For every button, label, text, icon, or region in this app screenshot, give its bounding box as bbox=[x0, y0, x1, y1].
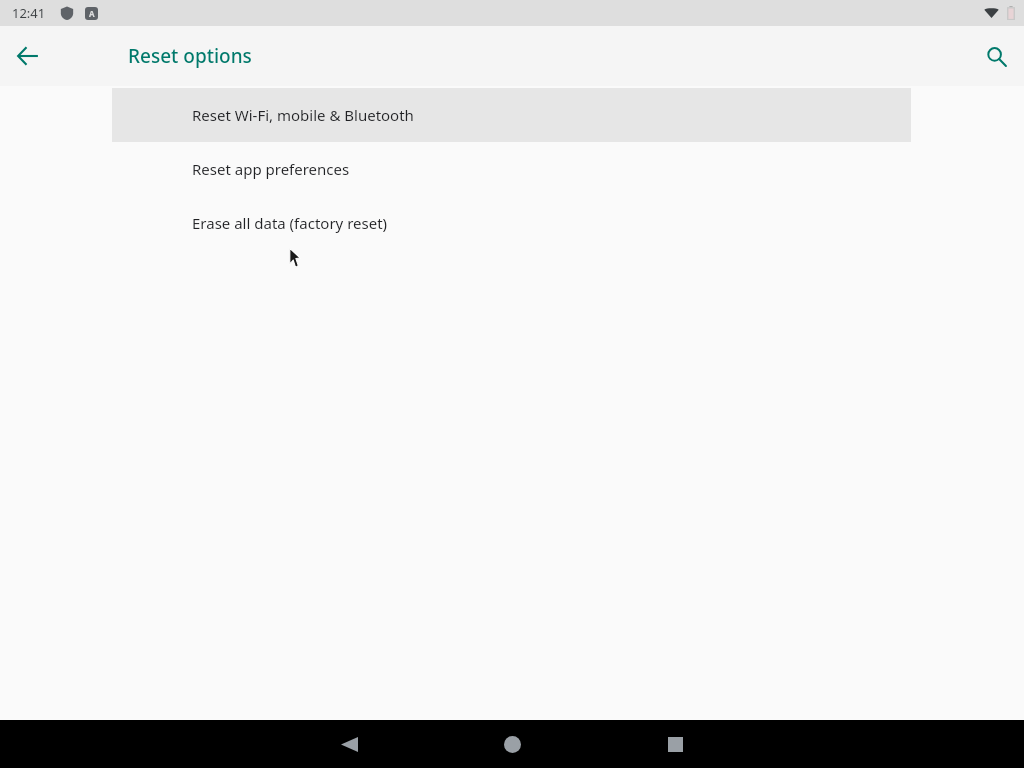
button[interactable]: Back bbox=[325, 720, 373, 768]
button[interactable]: Search bbox=[972, 32, 1020, 80]
button[interactable]: Erase all data (factory reset) bbox=[112, 196, 911, 250]
staticText: 12:41 bbox=[12, 4, 46, 22]
button[interactable]: Reset app preferences bbox=[112, 142, 911, 196]
button[interactable]: Recent apps bbox=[651, 720, 699, 768]
staticText: A bbox=[89, 8, 95, 19]
button[interactable]: Back bbox=[4, 32, 52, 80]
staticText: Reset app preferences bbox=[192, 159, 350, 179]
staticText: Reset Wi-Fi, mobile & Bluetooth bbox=[192, 105, 414, 125]
button[interactable]: Reset Wi-Fi, mobile & Bluetooth bbox=[112, 88, 911, 142]
button[interactable]: Home bbox=[488, 720, 536, 768]
staticText: Reset options bbox=[128, 43, 252, 69]
staticText: Erase all data (factory reset) bbox=[192, 213, 388, 233]
